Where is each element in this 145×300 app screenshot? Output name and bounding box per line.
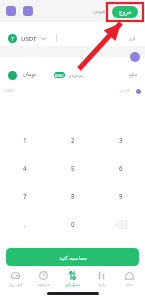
button[interactable]: کیف پول bbox=[2, 266, 29, 287]
staticText: تاریخچه bbox=[37, 282, 50, 287]
button[interactable]: خانه bbox=[116, 266, 143, 287]
staticText: 0 bbox=[71, 220, 75, 228]
staticText: USDT bbox=[21, 35, 37, 43]
staticText: 1 bbox=[23, 136, 27, 144]
staticText: محاسبه کنید bbox=[59, 254, 87, 261]
button[interactable]: 2 bbox=[49, 126, 97, 154]
other: Backspace bbox=[116, 219, 127, 230]
button[interactable]: خروج bbox=[112, 6, 138, 18]
button[interactable]: Phone bbox=[6, 6, 16, 16]
button[interactable]: 9 bbox=[97, 182, 145, 210]
staticText: 8 bbox=[71, 192, 75, 200]
button[interactable]: Signal bbox=[23, 6, 33, 16]
staticText: ارز bbox=[129, 35, 136, 41]
staticText: 3 bbox=[119, 136, 123, 144]
staticText: مبلغ bbox=[129, 71, 138, 77]
staticText: کیف پول bbox=[8, 282, 23, 287]
staticText: MAX bbox=[55, 73, 64, 78]
staticText: بازار bbox=[98, 282, 106, 287]
button[interactable]: T bbox=[0, 24, 145, 46]
button[interactable]: 5 bbox=[49, 154, 97, 182]
staticText: 5 bbox=[71, 164, 75, 172]
button[interactable]: بازار bbox=[88, 266, 115, 287]
staticText: 4 bbox=[23, 164, 27, 172]
button[interactable]: تبدیل ارز bbox=[59, 266, 86, 287]
button[interactable]: 4 bbox=[0, 154, 49, 182]
button[interactable]: 3 bbox=[97, 126, 145, 154]
staticText: 7 bbox=[23, 192, 27, 200]
button[interactable]: 0 bbox=[49, 210, 97, 238]
staticText: T bbox=[11, 35, 15, 43]
staticText: . bbox=[24, 220, 26, 228]
staticText: تومان bbox=[23, 71, 37, 77]
staticText: تبدیل ارز bbox=[65, 282, 80, 287]
button[interactable]: MAX bbox=[54, 72, 65, 78]
staticText: 6 bbox=[119, 164, 123, 172]
button[interactable]: 8 bbox=[49, 182, 97, 210]
button[interactable]: 7 bbox=[0, 182, 49, 210]
staticText: خانه bbox=[126, 282, 133, 287]
button[interactable]: Backspace bbox=[97, 210, 145, 238]
button[interactable]: تاریخچه bbox=[30, 266, 57, 287]
button[interactable]: 1 bbox=[0, 126, 49, 154]
button[interactable]: Support bbox=[130, 52, 140, 62]
staticText: موجودی bbox=[68, 73, 84, 78]
staticText: USDT bbox=[4, 88, 15, 93]
staticText: کارمزد bbox=[119, 88, 131, 93]
staticText: خروج bbox=[119, 9, 132, 15]
staticText: 2 bbox=[71, 136, 75, 144]
button[interactable]: محاسبه کنید bbox=[6, 248, 139, 266]
button[interactable]: 6 bbox=[97, 154, 145, 182]
staticText: 9 bbox=[119, 192, 123, 200]
staticText: هویتی bbox=[93, 8, 106, 14]
